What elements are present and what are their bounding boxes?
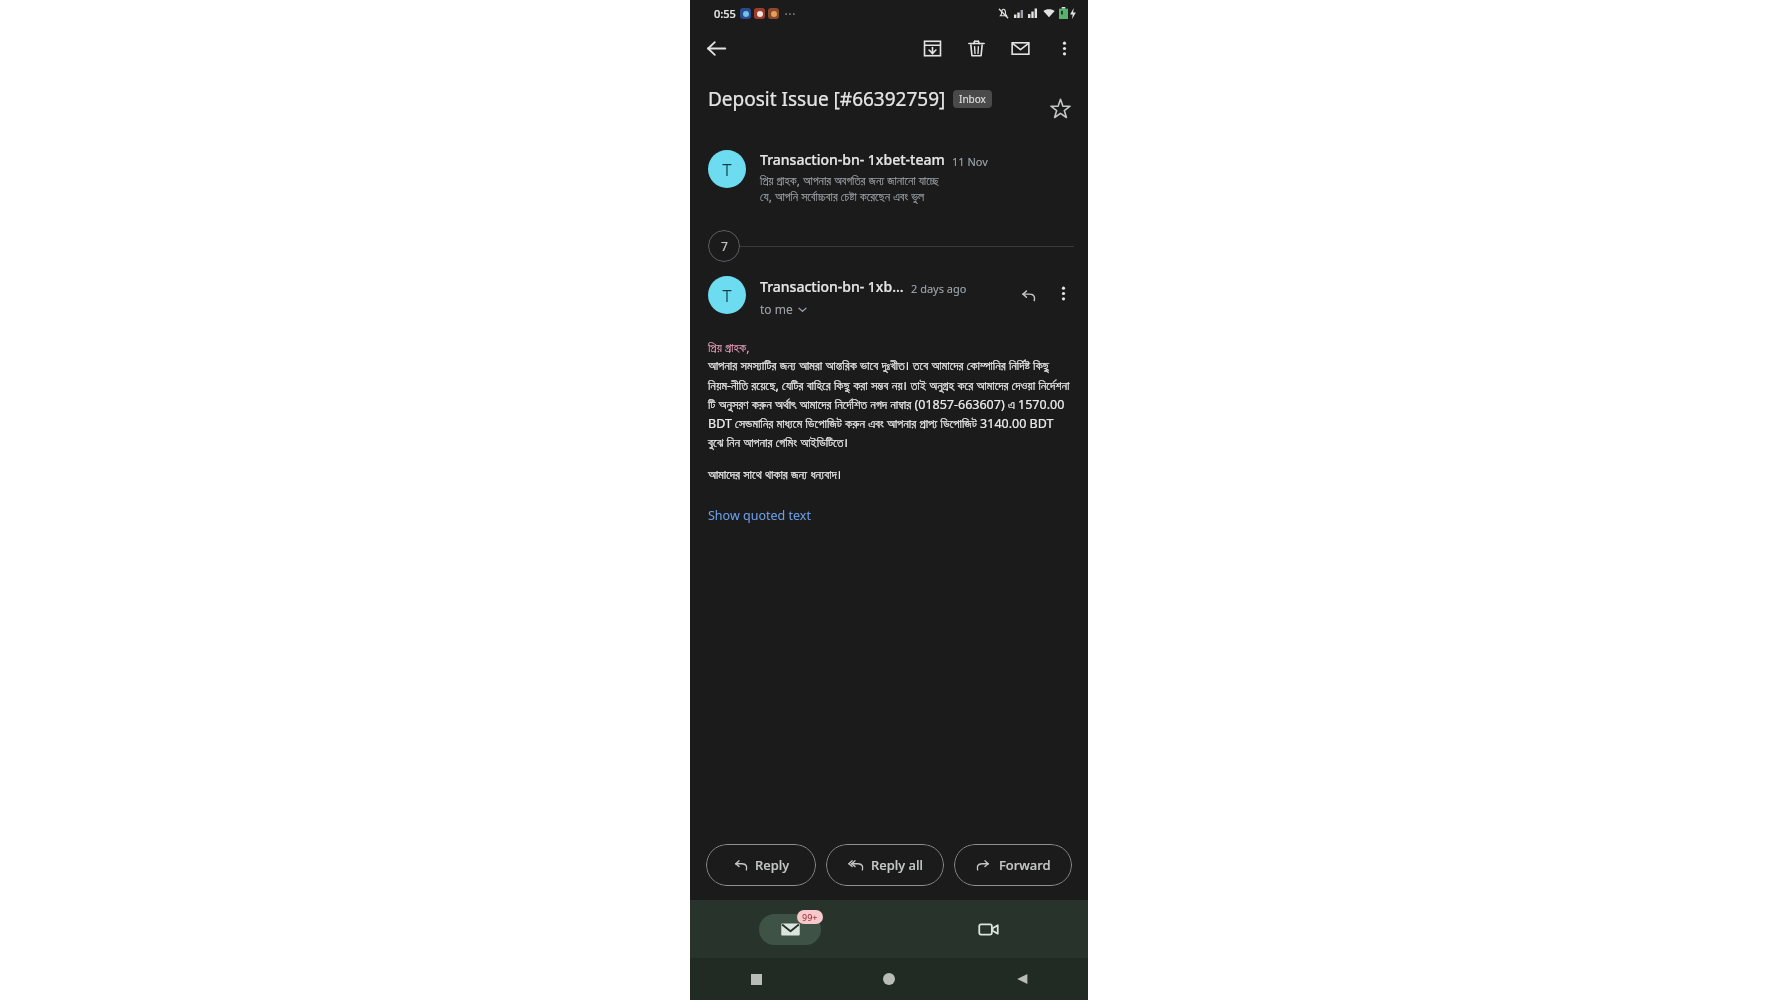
staticText: to me <box>760 301 793 317</box>
staticText: Transaction-bn- 1xb… <box>760 277 904 296</box>
button[interactable]: Mark unread <box>998 26 1042 70</box>
button[interactable]: 7 collapsed messages <box>690 230 1088 262</box>
staticText: Forward <box>999 856 1051 874</box>
staticText: Reply <box>755 856 790 874</box>
staticText: আপনার সমস্যাটির জন্য আমরা আন্তরিক ভাবে দ… <box>708 357 1070 451</box>
button[interactable]: Star <box>1040 88 1080 128</box>
button[interactable]: Mail, 99+ unread <box>690 900 889 958</box>
button[interactable]: More options <box>1042 26 1086 70</box>
button[interactable]: Reply <box>706 844 816 886</box>
staticText: Deposit Issue [#66392759] <box>708 86 946 112</box>
staticText: 99+ <box>802 911 818 923</box>
staticText: 2 days ago <box>911 281 967 296</box>
button[interactable]: Show quoted text <box>708 507 811 524</box>
staticText: Transaction-bn- 1xbet-team <box>760 150 945 169</box>
staticText: Inbox <box>959 92 986 106</box>
staticText: প্রিয় গ্রাহক, <box>708 339 750 356</box>
button[interactable]: to me <box>760 301 808 317</box>
staticText: T <box>722 284 732 307</box>
staticText: 11 Nov <box>952 154 988 169</box>
button[interactable]: T <box>690 142 1088 212</box>
staticText: T <box>722 158 732 181</box>
staticText: Show quoted text <box>708 507 811 524</box>
staticText: Reply all <box>871 856 923 874</box>
button[interactable]: Back <box>694 26 738 70</box>
button[interactable]: Archive <box>910 26 954 70</box>
staticText: 7 <box>721 238 728 254</box>
staticText: প্রিয় গ্রাহক, আপনার অবগতির জন্য জানানো … <box>760 172 939 188</box>
button[interactable]: Reply all <box>826 844 944 886</box>
button[interactable]: More options <box>1046 276 1080 310</box>
staticText: 0:55 <box>714 6 736 21</box>
button[interactable]: Reply <box>1008 276 1046 314</box>
staticText: যে, আপনি সর্বোচ্চবার চেষ্টা করেছেন এবং ভ… <box>760 188 925 204</box>
button[interactable]: Back <box>955 958 1088 1000</box>
staticText: আমাদের সাথে থাকার জন্য ধন্যবাদ। <box>708 466 842 483</box>
button[interactable]: Recents <box>690 958 822 1000</box>
button[interactable]: Forward <box>954 844 1072 886</box>
button[interactable]: Delete <box>954 26 998 70</box>
button[interactable]: Home <box>822 958 955 1000</box>
button[interactable]: Meet <box>889 900 1088 958</box>
